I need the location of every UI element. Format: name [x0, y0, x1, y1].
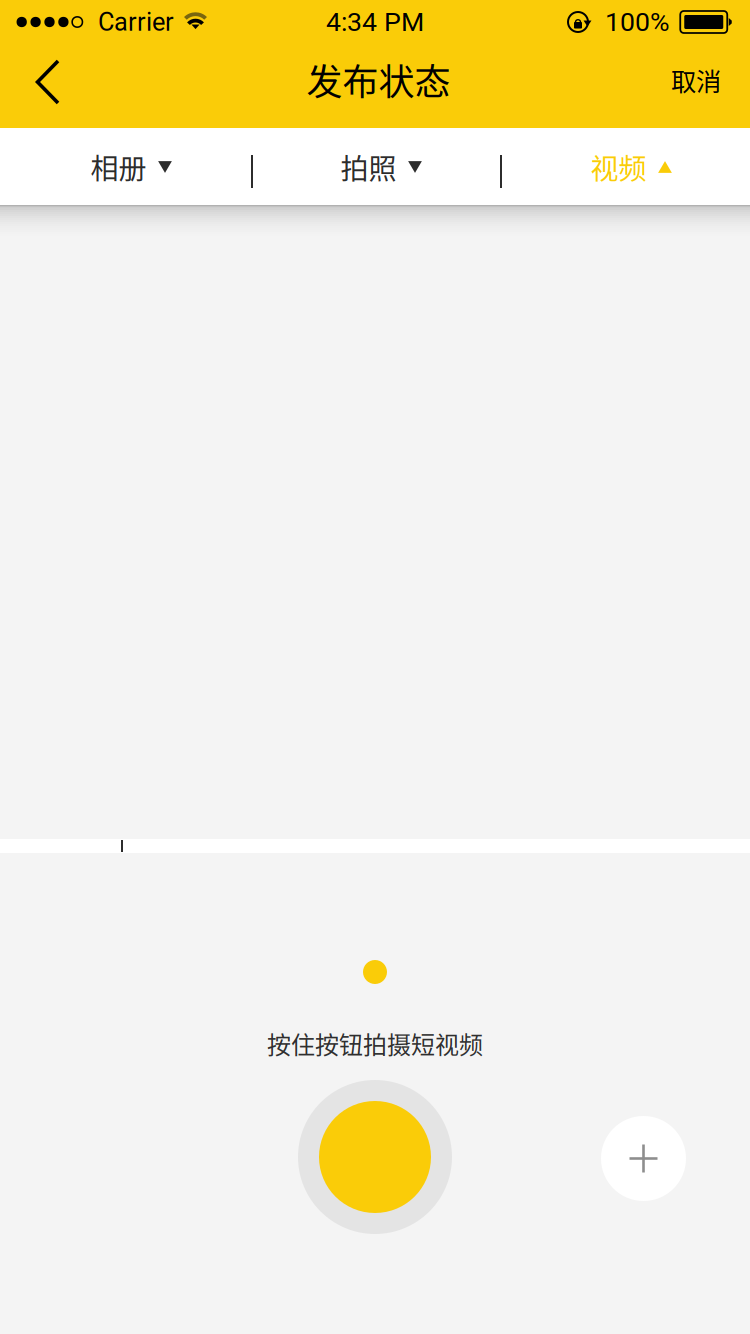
staticText: 取消	[671, 62, 721, 98]
button[interactable]: Record video	[298, 1080, 452, 1234]
staticText: 100%	[605, 6, 670, 38]
staticText: 视频	[590, 147, 646, 187]
staticText: 拍照	[340, 147, 396, 187]
staticText: 相册	[90, 147, 146, 187]
staticText: 发布状态	[306, 53, 450, 105]
button[interactable]: Back	[0, 43, 86, 129]
button[interactable]: 拍照	[250, 128, 500, 206]
button[interactable]: Add	[601, 1116, 686, 1201]
button[interactable]: 视频	[500, 128, 750, 206]
button[interactable]: 相册	[0, 128, 250, 206]
button[interactable]: 取消	[641, 42, 750, 130]
staticText: Carrier	[98, 7, 174, 37]
staticText: 按住按钮拍摄短视频	[267, 1026, 483, 1061]
staticText: 4:34 PM	[326, 6, 424, 38]
